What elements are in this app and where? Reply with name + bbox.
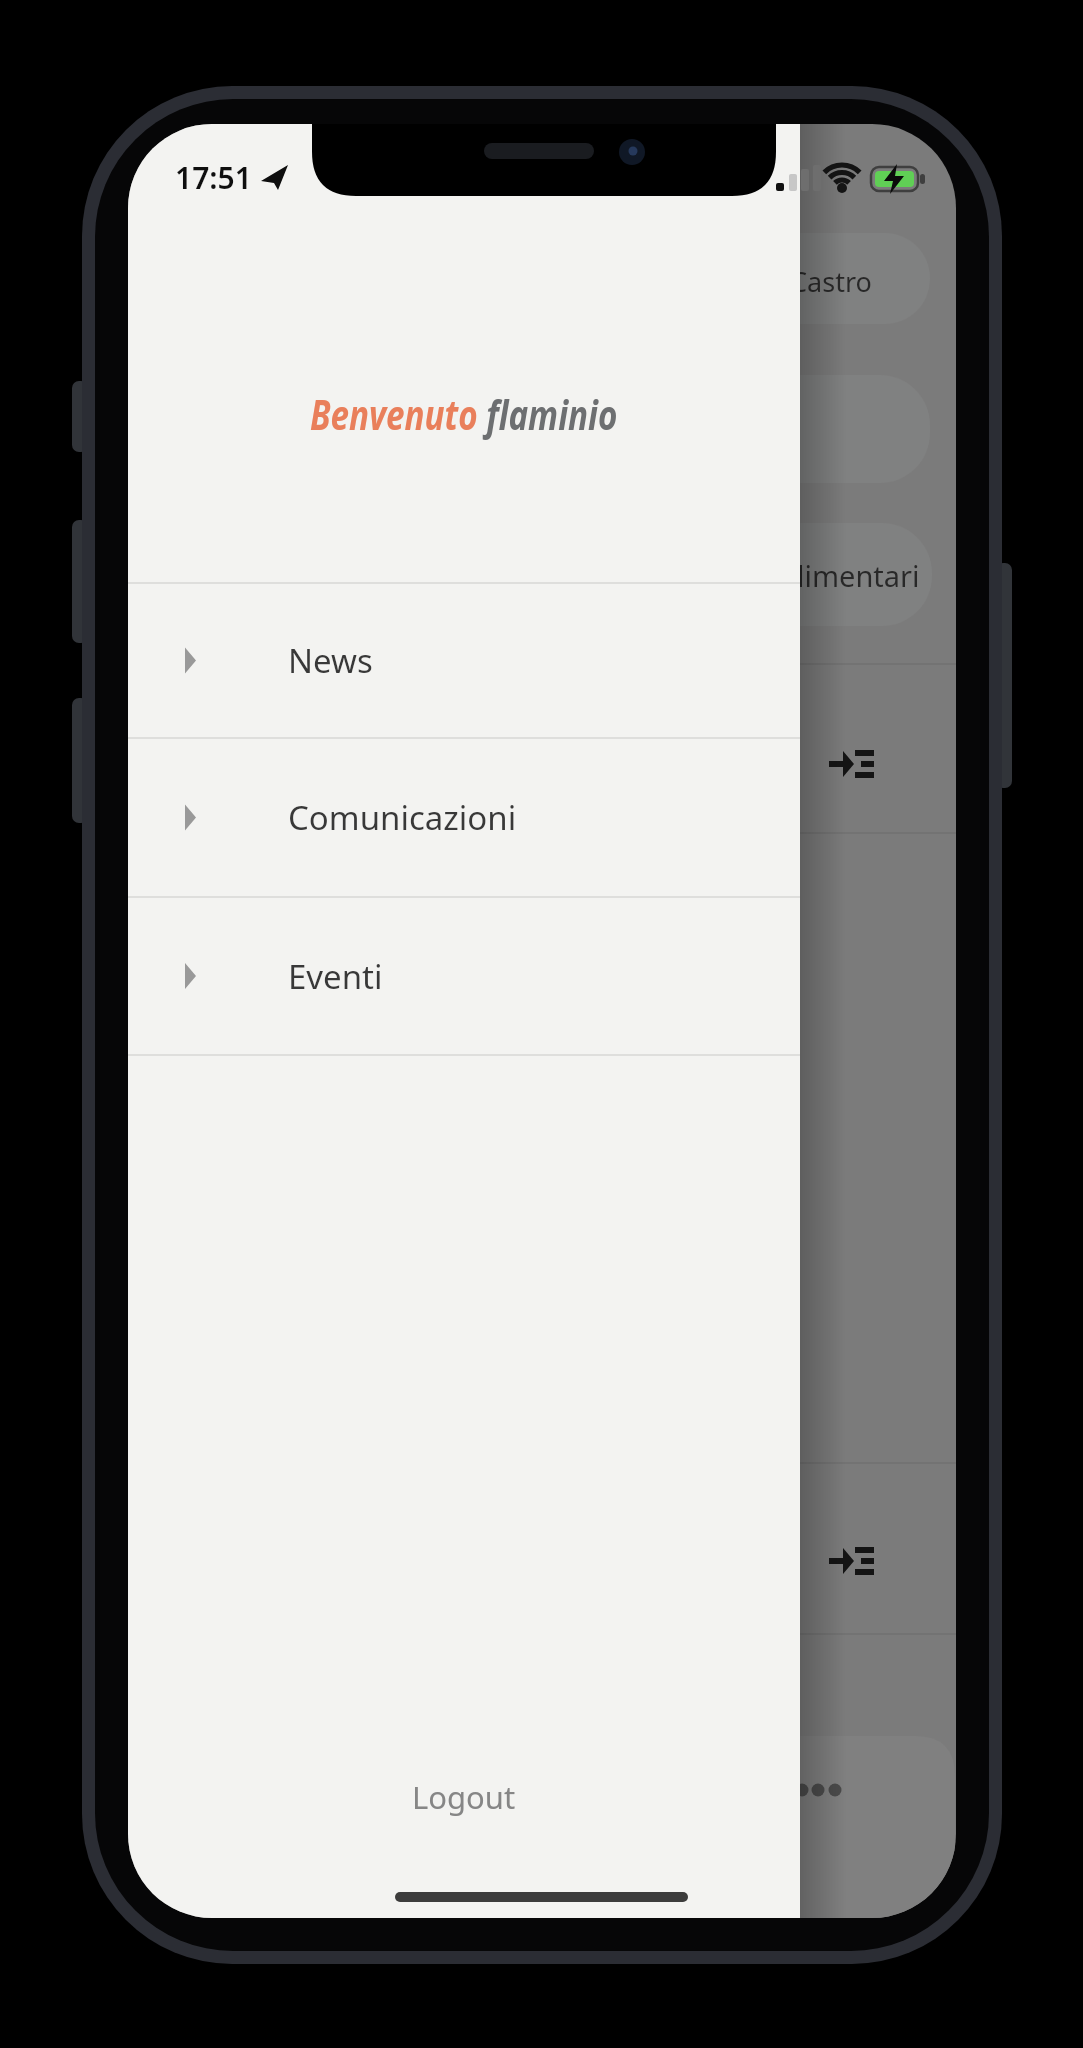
button[interactable]: Comunicazioni — [128, 739, 800, 896]
staticText: limentari — [797, 556, 920, 595]
button[interactable]: Eventi — [128, 898, 800, 1054]
staticText: Castro — [790, 263, 872, 300]
staticText: 17:51 — [175, 157, 252, 198]
button[interactable]: Logout — [364, 1767, 564, 1827]
staticText: Comunicazioni — [288, 795, 517, 840]
staticText: Eventi — [288, 954, 383, 999]
staticText: Logout — [412, 1776, 516, 1818]
button[interactable]: News — [128, 584, 800, 737]
staticText: News — [288, 638, 373, 683]
staticText: Benvenuto flaminio — [310, 385, 618, 442]
